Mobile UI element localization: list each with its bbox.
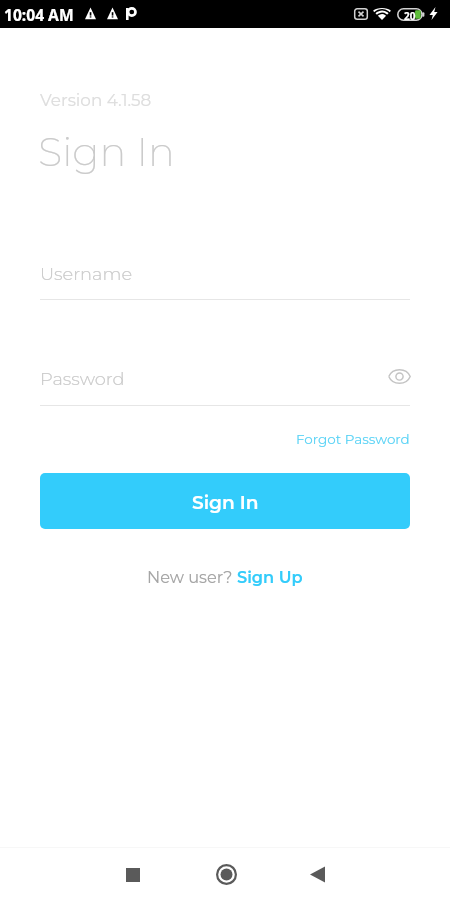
staticText: Sign In — [192, 491, 259, 514]
button[interactable]: Back — [290, 848, 344, 900]
staticText: Username — [40, 263, 133, 285]
staticText: 10:04 AM — [4, 4, 74, 25]
button[interactable]: Home — [199, 848, 253, 900]
staticText: Sign In — [38, 127, 175, 176]
button[interactable]: Forgot Password — [296, 431, 410, 447]
staticText: New user? — [147, 567, 237, 587]
button[interactable]: Password — [40, 368, 410, 406]
button[interactable]: Username — [40, 263, 410, 300]
button[interactable]: Sign In — [40, 473, 410, 529]
button[interactable]: Recents — [106, 848, 160, 900]
button[interactable]: Show password — [381, 358, 417, 394]
staticText: Password — [40, 368, 125, 390]
button[interactable]: Sign Up — [237, 567, 303, 587]
staticText: Version 4.1.58 — [40, 90, 152, 110]
staticText: 20 — [404, 9, 416, 23]
